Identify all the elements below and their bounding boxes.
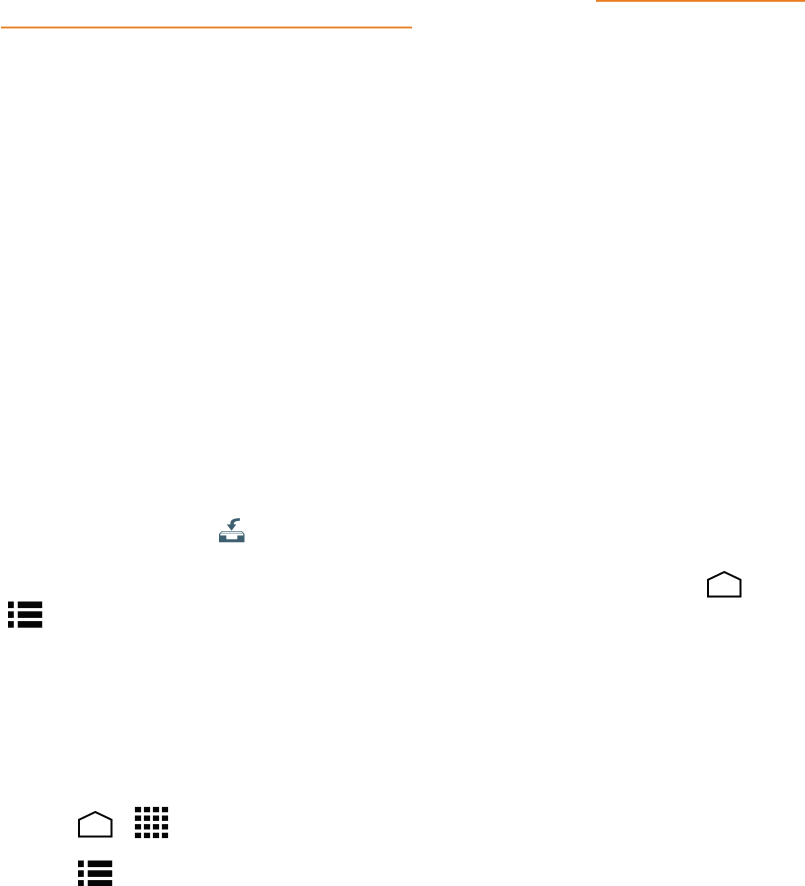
button[interactable]: Apps	[135, 807, 168, 838]
button[interactable]: Home	[707, 571, 741, 597]
button[interactable]: List	[78, 860, 112, 886]
button[interactable]: Move to Inbox	[219, 518, 244, 542]
button[interactable]: List	[8, 601, 42, 628]
button[interactable]: Home	[78, 811, 112, 837]
